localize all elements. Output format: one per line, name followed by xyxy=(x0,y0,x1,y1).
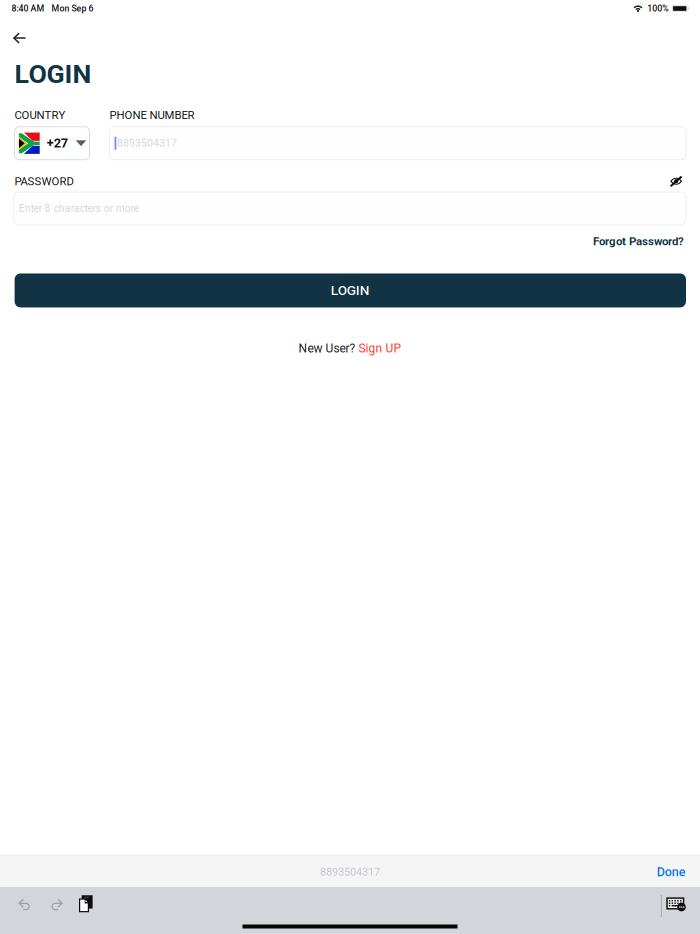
staticText: Done xyxy=(657,865,686,879)
button[interactable]: Undo xyxy=(0,893,40,919)
button[interactable]: Paste xyxy=(72,892,102,920)
button[interactable]: Done xyxy=(647,855,700,888)
staticText: 8893504317 xyxy=(320,866,380,878)
staticText: Forgot Password? xyxy=(593,234,684,248)
button[interactable]: Back xyxy=(0,25,39,49)
staticText: 100% xyxy=(647,3,668,14)
staticText: New User? xyxy=(298,341,358,355)
staticText: COUNTRY xyxy=(14,108,65,122)
staticText: PHONE NUMBER xyxy=(109,108,194,122)
button[interactable]: LOGIN xyxy=(15,273,686,307)
staticText: +27 xyxy=(47,136,68,151)
staticText: 8:40 AM xyxy=(11,3,44,14)
staticText: LOGIN xyxy=(331,282,370,298)
staticText: Mon Sep 6 xyxy=(51,3,93,14)
button[interactable]: Sign UP xyxy=(358,341,401,355)
button[interactable]: Redo xyxy=(40,893,72,919)
staticText: Sign UP xyxy=(358,341,401,355)
staticText: 8893504317 xyxy=(117,137,177,149)
button[interactable]: Show password xyxy=(670,176,682,186)
button[interactable]: Keyboard options xyxy=(662,892,700,920)
staticText: PASSWORD xyxy=(14,175,73,188)
button[interactable]: +27 xyxy=(14,127,89,160)
button[interactable]: Forgot Password? xyxy=(593,234,684,248)
staticText: LOGIN xyxy=(14,58,91,89)
staticText: Enter 8 characters or more xyxy=(19,203,139,214)
